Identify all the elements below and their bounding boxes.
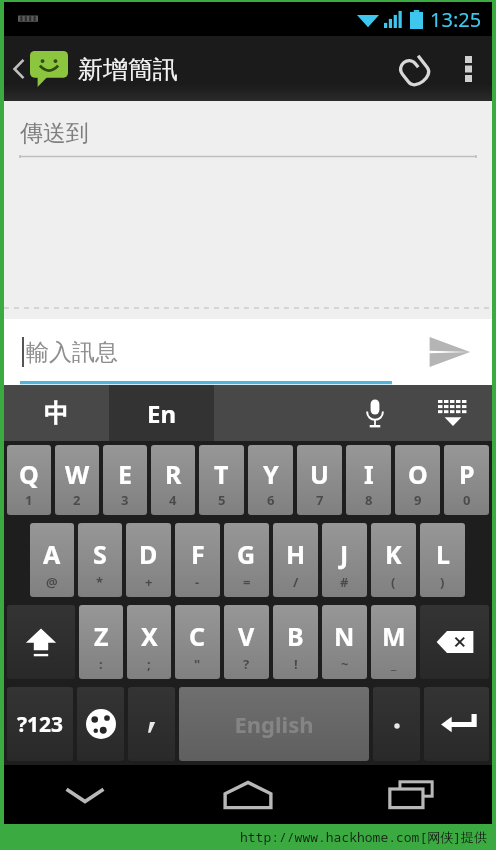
button[interactable]: Backspace (420, 605, 489, 679)
staticText: C (189, 619, 206, 653)
button[interactable]: Z (79, 605, 123, 679)
button[interactable]: X (127, 605, 171, 679)
button[interactable]: A (30, 523, 74, 597)
staticText: 4 (169, 491, 177, 509)
button[interactable]: V (224, 605, 269, 679)
button[interactable]: W (55, 445, 99, 515)
button[interactable]: L (420, 523, 465, 597)
staticText: Y (263, 457, 279, 491)
staticText: K (385, 537, 402, 571)
staticText: O (408, 457, 428, 491)
staticText: I (364, 457, 374, 491)
button[interactable]: 新增簡訊 (4, 45, 184, 93)
staticText: R (165, 457, 182, 491)
staticText: + (145, 573, 153, 591)
button[interactable]: Voice input (336, 385, 414, 441)
button[interactable]: Enter (424, 687, 489, 761)
staticText: ?123 (17, 710, 64, 739)
button[interactable]: ?123 (7, 687, 73, 761)
button[interactable]: Hide keyboard (414, 385, 492, 441)
button[interactable]: En (109, 385, 214, 441)
button[interactable]: Y (248, 445, 293, 515)
staticText: En (147, 397, 177, 430)
staticText: 傳送到 (20, 119, 89, 148)
button[interactable]: Q (7, 445, 51, 515)
staticText: 2 (73, 491, 81, 509)
button[interactable]: U (297, 445, 342, 515)
staticText: 8 (365, 491, 373, 509)
button[interactable]: B (273, 605, 318, 679)
staticText: J (340, 537, 349, 571)
button[interactable]: 傳送到 (20, 111, 476, 155)
staticText: _ (391, 655, 397, 673)
button[interactable]: D (126, 523, 171, 597)
staticText: 7 (316, 491, 324, 509)
staticText: 5 (218, 491, 226, 509)
staticText: P (459, 457, 475, 491)
button[interactable]: More options (444, 36, 492, 101)
staticText: / (293, 573, 299, 591)
button[interactable]: I (346, 445, 391, 515)
staticText: - (195, 573, 200, 591)
staticText: @ (46, 573, 58, 591)
button[interactable]: Recent apps (329, 765, 492, 824)
button[interactable]: S (78, 523, 122, 597)
staticText: A (43, 537, 61, 571)
staticText: 13:25 (430, 6, 482, 33)
staticText: ; (147, 655, 151, 673)
staticText: B (287, 619, 304, 653)
button[interactable]: Send (406, 319, 492, 385)
button[interactable]: Attach (382, 36, 444, 101)
button[interactable]: K (371, 523, 416, 597)
staticText: E (118, 457, 133, 491)
button[interactable]: R (151, 445, 195, 515)
staticText: X (141, 619, 158, 653)
button[interactable]: J (322, 523, 367, 597)
button[interactable]: Change language (77, 687, 124, 761)
button[interactable]: 輸入訊息 (22, 319, 406, 385)
button[interactable]: P (444, 445, 489, 515)
staticText: = (243, 573, 251, 591)
staticText: ( (391, 573, 396, 591)
staticText: V (238, 619, 255, 653)
button[interactable]: H (273, 523, 318, 597)
staticText: 1 (25, 491, 33, 509)
button[interactable]: O (395, 445, 440, 515)
button[interactable]: English (179, 687, 369, 761)
staticText: : (99, 655, 103, 673)
staticText: G (237, 537, 256, 571)
button[interactable]: M (371, 605, 416, 679)
button[interactable]: 中 (4, 385, 109, 441)
staticText: 新增簡訊 (78, 54, 178, 85)
staticText: ! (294, 655, 298, 673)
button[interactable]: Home (166, 765, 329, 824)
button[interactable]: F (175, 523, 220, 597)
button[interactable]: Shift (7, 605, 75, 679)
staticText: S (93, 537, 107, 571)
staticText: ? (243, 655, 250, 673)
staticText: " (194, 655, 201, 673)
button[interactable]: T (199, 445, 244, 515)
staticText: N (334, 619, 355, 653)
button[interactable]: Period (373, 687, 420, 761)
button[interactable]: C (175, 605, 220, 679)
staticText: Q (19, 457, 39, 491)
staticText: L (436, 537, 450, 571)
staticText: 3 (121, 491, 129, 509)
staticText: D (139, 537, 158, 571)
staticText: U (310, 457, 329, 491)
button[interactable]: G (224, 523, 269, 597)
button[interactable]: Comma (128, 687, 175, 761)
staticText: * (96, 573, 104, 591)
staticText: 輸入訊息 (26, 338, 118, 367)
staticText: http://www.hackhome.com[网侠]提供 (240, 828, 488, 846)
staticText: Z (94, 619, 109, 653)
button[interactable]: E (103, 445, 147, 515)
staticText: F (191, 537, 205, 571)
staticText: 9 (414, 491, 422, 509)
staticText: ) (440, 573, 445, 591)
button[interactable]: Hide keyboard (4, 765, 166, 824)
button[interactable]: N (322, 605, 367, 679)
staticText: W (65, 457, 90, 491)
